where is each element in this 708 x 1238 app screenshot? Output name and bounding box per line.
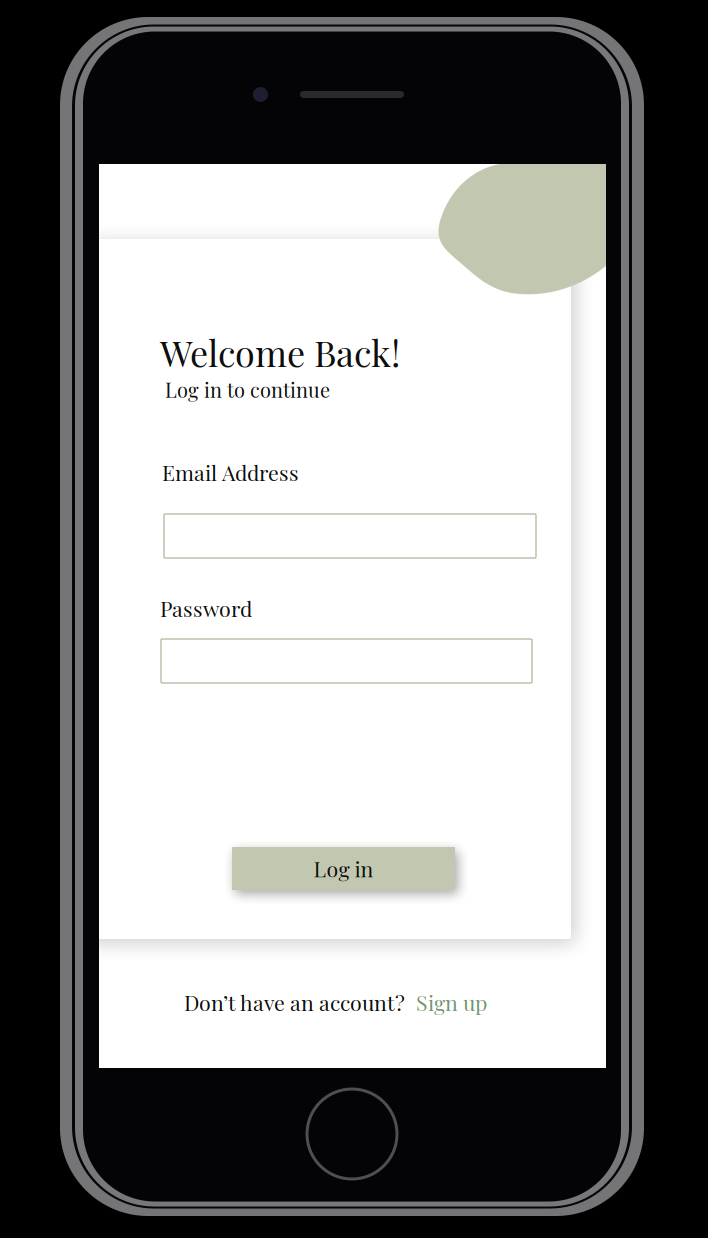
button[interactable]: Email Address xyxy=(164,514,536,558)
staticText: Log in to continue xyxy=(165,376,330,403)
staticText: Welcome Back! xyxy=(160,328,400,376)
button[interactable]: Log in xyxy=(232,847,455,890)
staticText: Email Address xyxy=(162,458,299,486)
staticText: Don’t have an account? xyxy=(184,988,405,1016)
staticText: Sign up xyxy=(416,988,487,1016)
button[interactable]: Sign up xyxy=(416,988,487,1016)
staticText: Password xyxy=(160,594,252,622)
button[interactable]: Password xyxy=(161,639,532,683)
staticText: Log in xyxy=(313,854,373,883)
